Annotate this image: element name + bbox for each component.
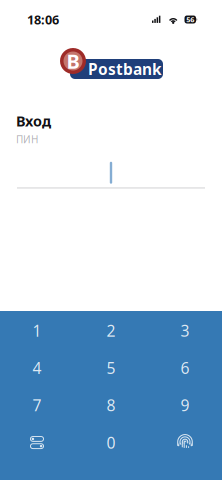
staticText: 8 [106, 394, 115, 416]
button[interactable]: 5 [74, 349, 148, 387]
button[interactable]: 6 [148, 349, 222, 387]
button[interactable]: Sign in with fingerprint [148, 424, 222, 461]
button[interactable]: 0 [74, 424, 148, 461]
button[interactable]: Change sign-in method [0, 424, 74, 461]
button[interactable]: 9 [148, 387, 222, 424]
button[interactable]: 8 [74, 387, 148, 424]
staticText: Postbank [88, 58, 162, 80]
staticText: 5 [106, 357, 115, 379]
staticText: 9 [180, 394, 189, 416]
staticText: 2 [106, 320, 115, 341]
button[interactable]: 4 [0, 349, 74, 387]
staticText: 0 [106, 432, 115, 453]
staticText: 18:06 [27, 11, 59, 28]
staticText: Вход [16, 111, 51, 131]
button[interactable]: 7 [0, 387, 74, 424]
button[interactable]: 3 [148, 312, 222, 349]
staticText: 56 [186, 14, 194, 24]
staticText: 3 [180, 320, 189, 341]
button[interactable]: 1 [0, 312, 74, 349]
staticText: 4 [32, 357, 41, 379]
staticText: 7 [32, 394, 41, 416]
button[interactable]: 2 [74, 312, 148, 349]
staticText: 6 [180, 357, 189, 379]
staticText: 1 [32, 320, 41, 341]
staticText: ПИН [16, 133, 38, 146]
staticText: B [66, 47, 79, 75]
